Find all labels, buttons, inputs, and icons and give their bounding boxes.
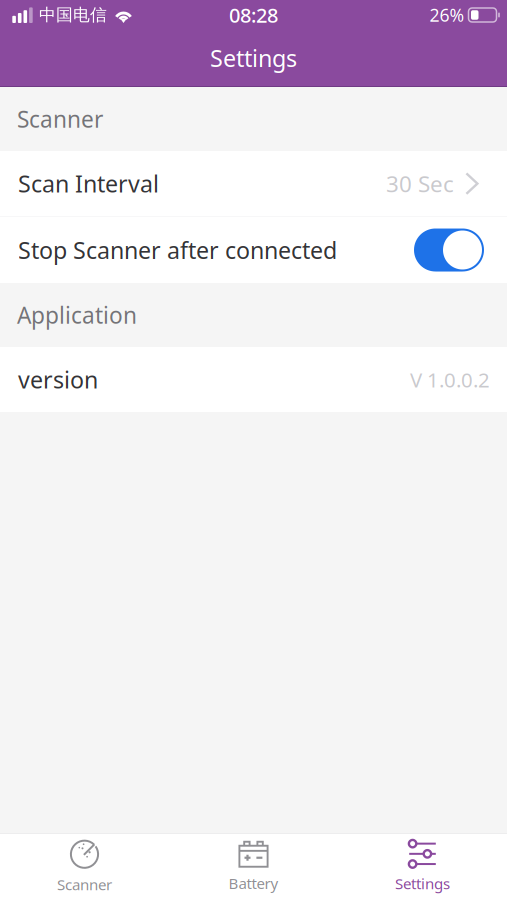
staticText: 中国电信 [39, 4, 107, 26]
staticText: Battery [228, 873, 278, 893]
staticText: Settings [395, 873, 450, 894]
staticText: Settings [210, 42, 297, 74]
button[interactable]: Battery [169, 834, 338, 900]
staticText: V 1.0.0.2 [410, 366, 490, 393]
staticText: 30 Sec [386, 168, 454, 199]
button[interactable]: Scan Interval [0, 151, 507, 216]
staticText: Scanner [17, 104, 103, 134]
staticText: version [18, 364, 98, 395]
staticText: Scanner [57, 874, 112, 895]
staticText: Application [17, 300, 137, 330]
button[interactable]: Scanner [0, 834, 169, 900]
button[interactable]: Settings [338, 834, 507, 900]
staticText: 26% [429, 3, 464, 27]
button[interactable]: Stop Scanner after connected [0, 217, 507, 283]
staticText: Stop Scanner after connected [18, 234, 337, 266]
staticText: Scan Interval [18, 168, 159, 199]
staticText: 08:28 [229, 2, 278, 28]
